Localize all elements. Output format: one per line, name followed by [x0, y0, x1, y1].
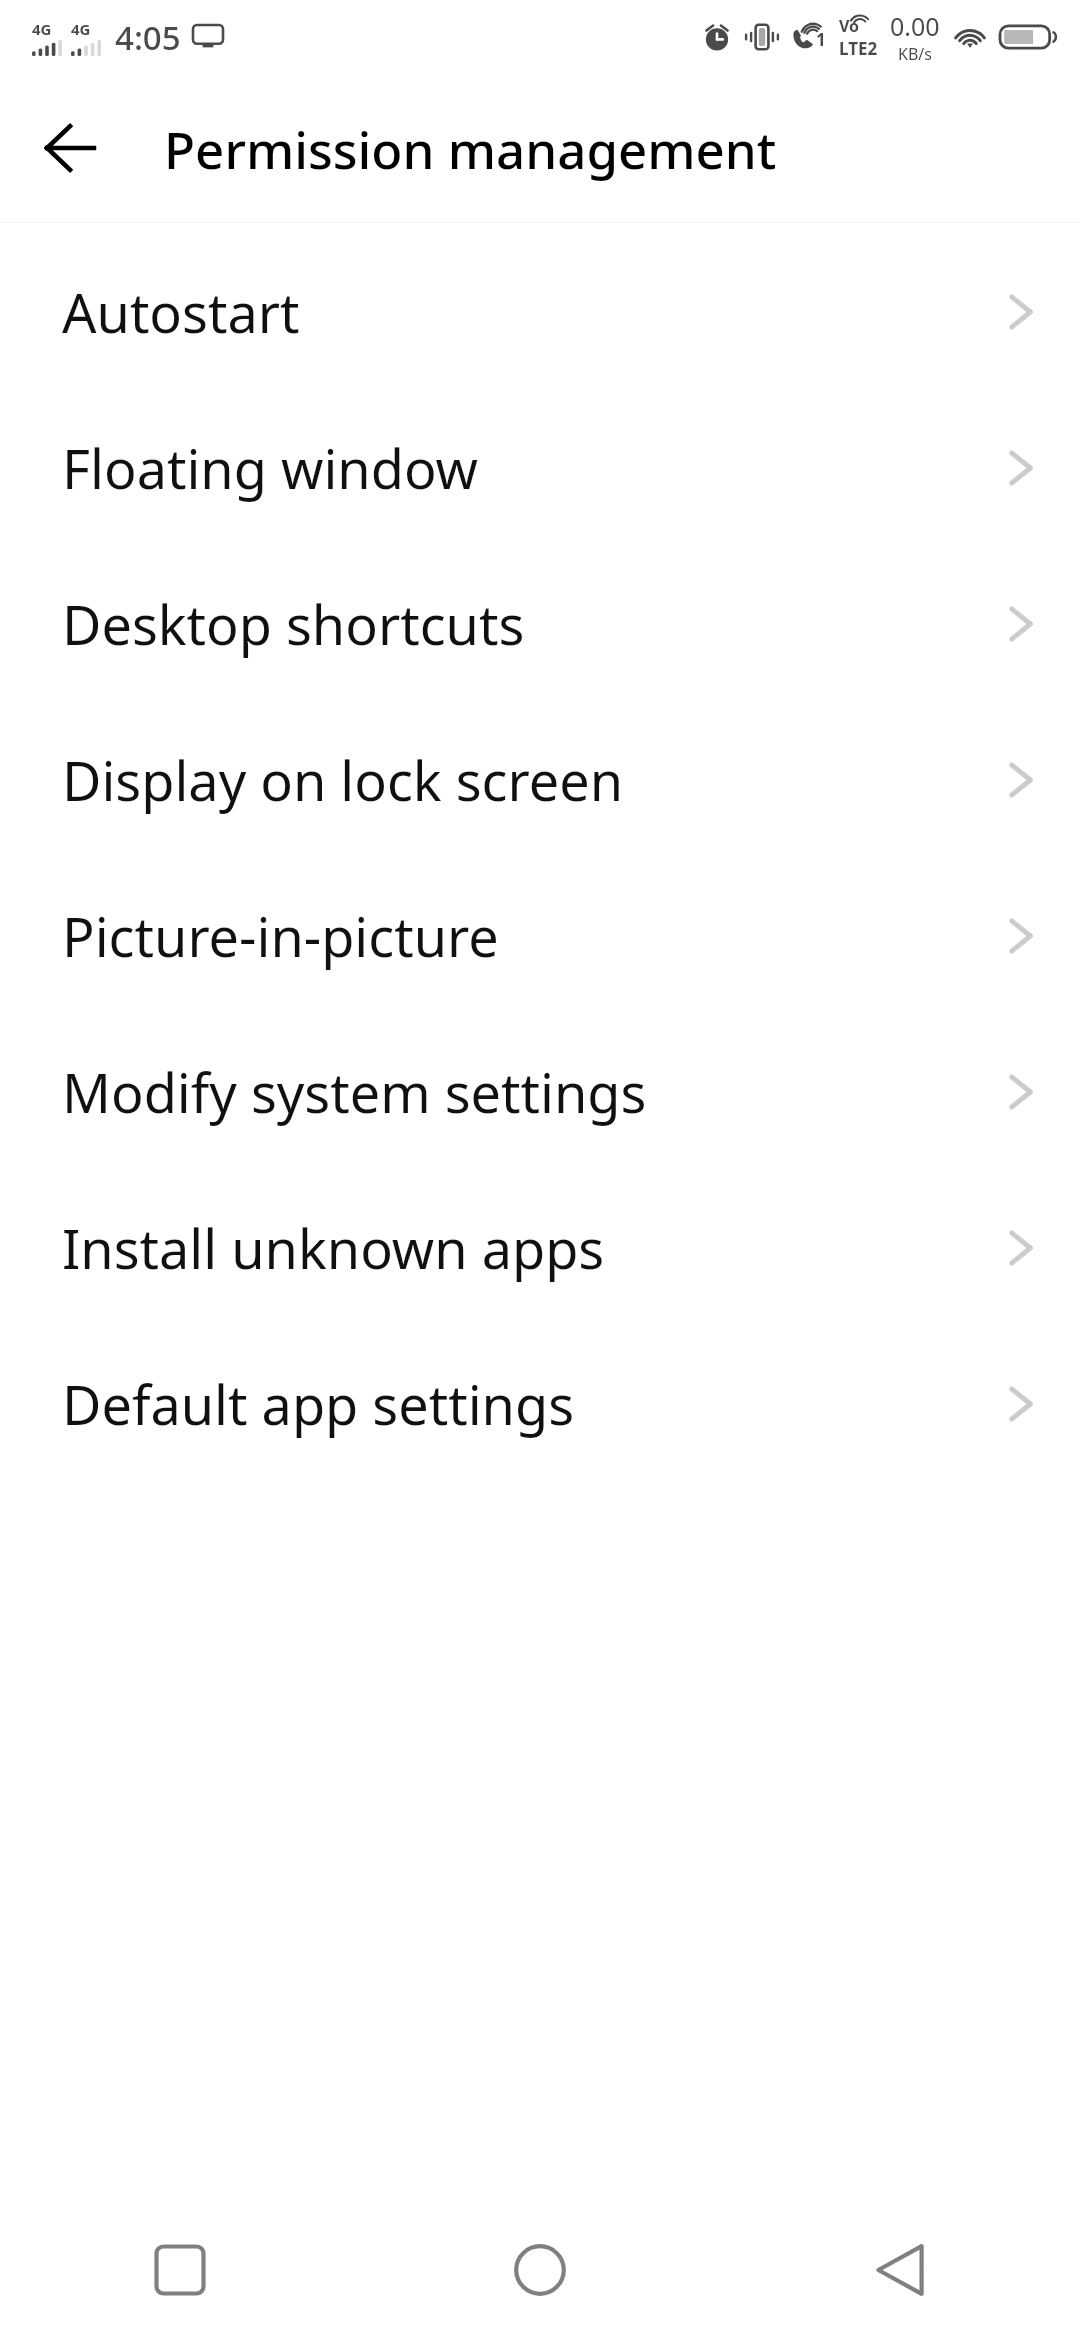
button[interactable]: Autostart [0, 234, 1080, 390]
staticText: 4G [71, 19, 91, 39]
staticText: Autostart [62, 275, 1008, 349]
button[interactable]: Floating window [0, 390, 1080, 546]
staticText: 4G [32, 19, 52, 39]
staticText: Picture-in-picture [62, 899, 1008, 973]
staticText: Floating window [62, 431, 1008, 505]
button[interactable]: Desktop shortcuts [0, 546, 1080, 702]
button[interactable]: Modify system settings [0, 1014, 1080, 1170]
button[interactable]: Display on lock screen [0, 702, 1080, 858]
button[interactable]: Back [30, 108, 110, 188]
staticText: Display on lock screen [62, 743, 1008, 817]
staticText: Permission management [164, 114, 777, 183]
button[interactable]: Recents [0, 2200, 360, 2340]
button[interactable]: Picture-in-picture [0, 858, 1080, 1014]
staticText: Default app settings [62, 1367, 1008, 1441]
staticText: KB/s [898, 43, 932, 65]
button[interactable]: Default app settings [0, 1326, 1080, 1482]
staticText: Desktop shortcuts [62, 587, 1008, 661]
button[interactable]: Back [720, 2200, 1080, 2340]
staticText: Install unknown apps [62, 1211, 1008, 1285]
staticText: Modify system settings [62, 1055, 1008, 1129]
button[interactable]: Home [360, 2200, 720, 2340]
staticText: Vo [839, 15, 860, 37]
staticText: 1 [816, 28, 826, 51]
staticText: 0.00 [890, 9, 940, 43]
staticText: LTE2 [839, 37, 878, 60]
button[interactable]: Install unknown apps [0, 1170, 1080, 1326]
staticText: 4:05 [115, 15, 181, 60]
